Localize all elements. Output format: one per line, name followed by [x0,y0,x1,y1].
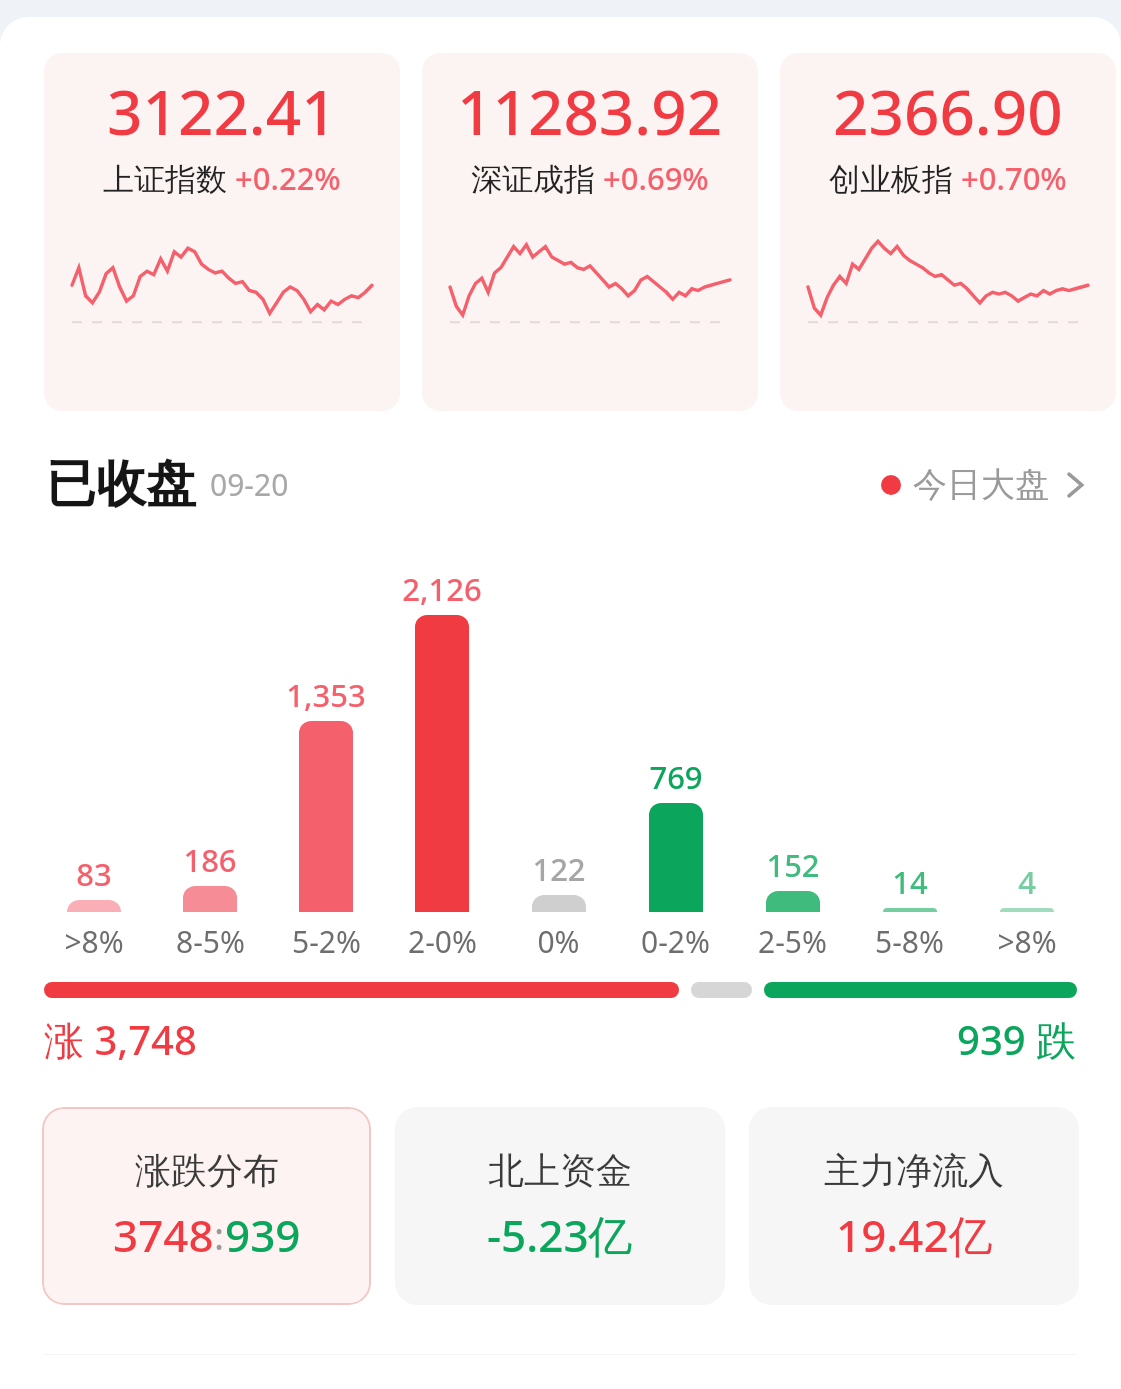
staticText: : [214,1209,225,1261]
button[interactable]: 今日大盘 [875,453,1093,516]
staticText: 0% [537,921,580,962]
staticText: 186 [183,839,237,881]
staticText: 5-8% [875,921,944,962]
button[interactable]: 152 [734,568,851,962]
staticText: >8% [997,921,1057,962]
button[interactable]: 11283.92 [422,53,758,411]
staticText: 11283.92 [457,69,723,153]
button[interactable]: 涨跌分布 [42,1107,371,1305]
staticText: 939 跌 [957,1012,1077,1067]
staticText: 152 [766,844,820,886]
staticText: 8-5% [176,921,245,962]
staticText: 3122.41 [107,69,337,153]
staticText: 2-5% [758,921,827,962]
staticText: 1,353 [286,674,366,716]
button[interactable]: 1,353 [268,568,384,962]
button[interactable]: 2,126 [384,568,500,962]
staticText: 939 [225,1205,301,1265]
staticText: 涨跌分布 [135,1148,279,1193]
button[interactable]: 2366.90 [780,53,1116,411]
button[interactable]: 83 [36,568,152,962]
staticText: 涨 3,748 [44,1012,197,1067]
staticText: 2366.90 [833,69,1063,153]
button[interactable]: 769 [617,568,734,962]
staticText: +0.22% [235,157,341,199]
staticText: 09-20 [210,464,289,505]
staticText: 83 [76,853,112,895]
button[interactable]: 北上资金 [395,1107,725,1305]
button[interactable]: 3122.41 [44,53,400,411]
staticText: 122 [532,848,586,890]
staticText: +0.69% [603,157,709,199]
staticText: 3748 [113,1205,214,1265]
staticText: 2,126 [402,568,482,610]
staticText: 0-2% [641,921,710,962]
staticText: +0.70% [961,157,1067,199]
staticText: >8% [64,921,124,962]
staticText: 2-0% [408,921,477,962]
button[interactable]: 主力净流入 [749,1107,1079,1305]
button[interactable]: 4 [968,568,1085,962]
staticText: 5-2% [292,921,361,962]
staticText: 主力净流入 [824,1148,1004,1193]
staticText: 4 [1018,861,1036,903]
staticText: 已收盘 [46,453,196,516]
staticText: 深证成指 [471,160,595,199]
button[interactable]: 122 [500,568,617,962]
staticText: 北上资金 [488,1148,632,1193]
staticText: 创业板指 [829,160,953,199]
button[interactable]: 14 [851,568,968,962]
staticText: 今日大盘 [913,463,1049,506]
button[interactable]: 186 [152,568,268,962]
staticText: 19.42亿 [836,1205,993,1265]
staticText: 14 [892,861,928,903]
staticText: 769 [649,756,703,798]
staticText: -5.23亿 [487,1205,633,1265]
staticText: 上证指数 [103,160,227,199]
